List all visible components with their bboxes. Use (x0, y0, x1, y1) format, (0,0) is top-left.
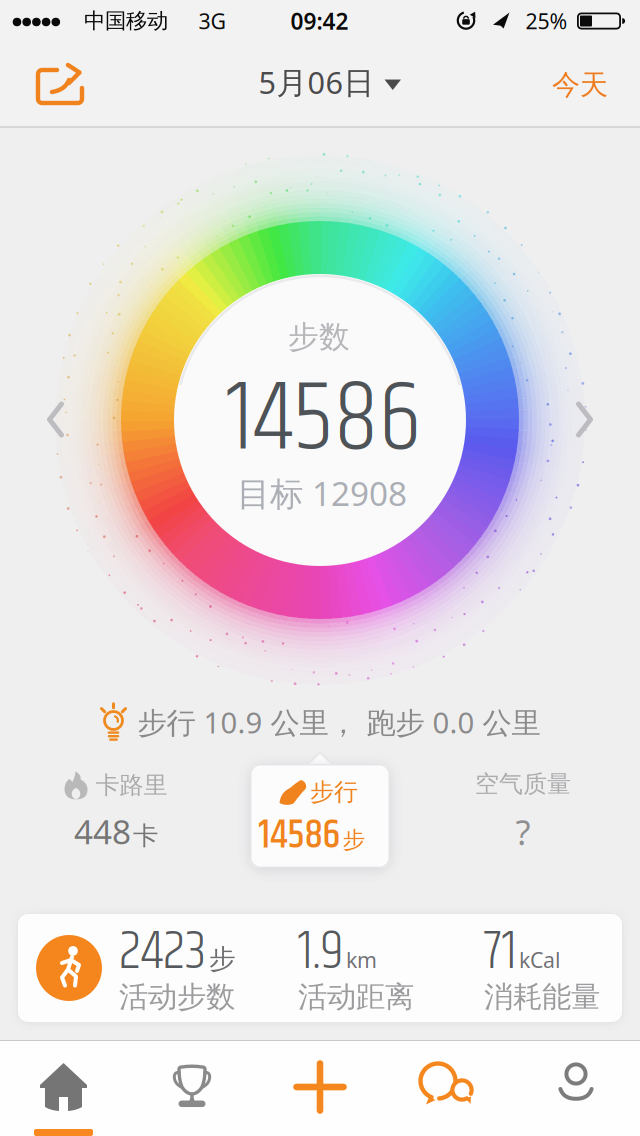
button[interactable]: Profile (516, 1048, 636, 1116)
staticText: 步 (209, 943, 236, 975)
staticText: 448 (74, 809, 131, 853)
button[interactable]: Community (386, 1050, 506, 1118)
button[interactable]: 今天 (552, 68, 608, 102)
button[interactable]: Share (29, 56, 93, 112)
staticText: 消耗能量 (484, 979, 600, 1015)
button[interactable]: Achievements (132, 1052, 252, 1120)
staticText: 步 (342, 826, 365, 854)
staticText: 活动距离 (298, 979, 414, 1015)
staticText: 1.9 (298, 909, 344, 995)
staticText: ? (515, 809, 530, 855)
staticText: 活动步数 (119, 979, 235, 1015)
staticText: kCal (519, 945, 561, 974)
staticText: 2423 (119, 909, 207, 995)
staticText: 步数 (288, 318, 350, 356)
staticText: 3G (198, 7, 226, 35)
staticText: 71 (484, 909, 517, 995)
staticText: 25% (525, 7, 567, 35)
button[interactable]: Add (260, 1053, 380, 1121)
button[interactable]: 空气质量 (475, 769, 571, 855)
staticText: 中国移动 (84, 8, 168, 34)
button[interactable]: 卡路里 (64, 771, 167, 853)
button[interactable]: Next day (578, 404, 591, 436)
staticText: 今天 (552, 68, 608, 102)
button[interactable]: Previous day (49, 404, 62, 436)
staticText: 5月06日 (258, 62, 374, 102)
button[interactable]: 5月06日 (258, 62, 401, 102)
staticText: km (346, 945, 377, 974)
button[interactable] (250, 764, 390, 868)
staticText: 14586 (226, 343, 421, 496)
staticText: 09:42 (290, 6, 348, 36)
button[interactable]: Home (3, 1053, 123, 1121)
staticText: 14586 (258, 805, 340, 867)
staticText: 步行 10.9 公里， 跑步 0.0 公里 (137, 702, 540, 741)
staticText: 空气质量 (475, 769, 571, 799)
staticText: 目标 12908 (237, 471, 407, 515)
staticText: 卡 (133, 820, 158, 851)
staticText: 卡路里 (95, 771, 167, 800)
staticText: 步行 (310, 777, 358, 807)
